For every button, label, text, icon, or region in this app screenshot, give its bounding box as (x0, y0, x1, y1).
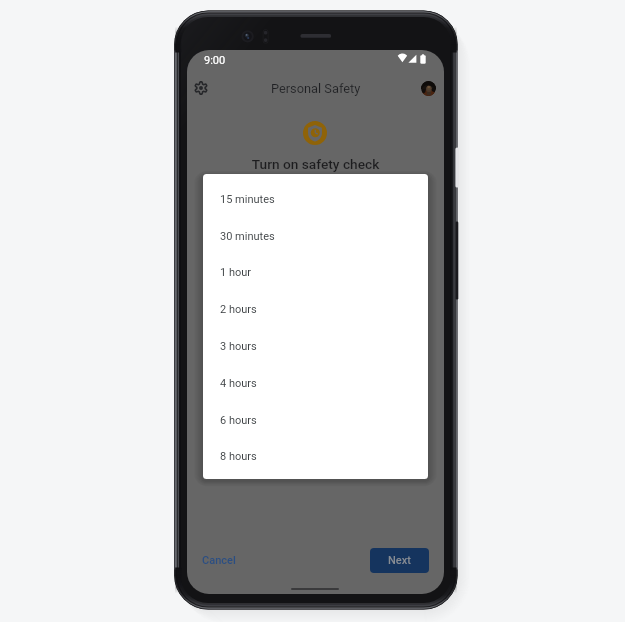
staticText: 3 hours (220, 340, 257, 353)
button[interactable]: Settings (189, 76, 213, 100)
button[interactable]: Cancel (202, 554, 236, 567)
button[interactable]: Account (416, 76, 440, 100)
button[interactable]: 4 hours (203, 365, 428, 402)
staticText: Next (388, 554, 411, 567)
button[interactable]: 15 minutes (203, 181, 428, 218)
button[interactable]: 6 hours (203, 402, 428, 439)
button[interactable]: 30 minutes (203, 218, 428, 255)
staticText: 15 minutes (220, 193, 275, 206)
staticText: Turn on safety check (187, 156, 444, 172)
button[interactable]: 8 hours (203, 438, 428, 475)
staticText: 8 hours (220, 450, 257, 463)
button[interactable]: 2 hours (203, 291, 428, 328)
staticText: 1 hour (220, 266, 252, 279)
staticText: 30 minutes (220, 230, 275, 243)
button[interactable]: 3 hours (203, 328, 428, 365)
button[interactable]: Next (370, 548, 429, 573)
staticText: 2 hours (220, 303, 257, 316)
staticText: 4 hours (220, 377, 257, 390)
staticText: 9:00 (204, 54, 226, 67)
button[interactable]: 1 hour (203, 254, 428, 291)
staticText: 6 hours (220, 414, 257, 427)
staticText: Cancel (202, 554, 236, 567)
staticText: Personal Safety (271, 81, 361, 96)
